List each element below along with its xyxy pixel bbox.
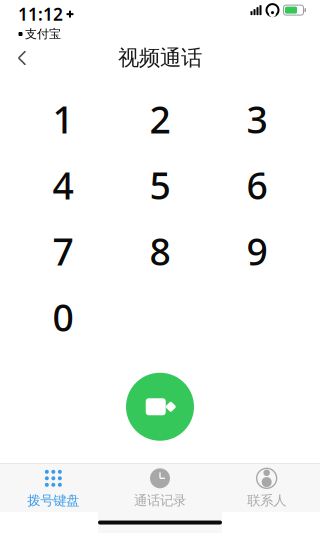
- button[interactable]: 2: [111, 86, 208, 152]
- staticText: 7: [52, 226, 73, 276]
- button[interactable]: 7: [14, 218, 111, 284]
- button[interactable]: 5: [111, 152, 208, 218]
- staticText: 2: [149, 94, 170, 144]
- button[interactable]: 联系人: [213, 464, 320, 512]
- staticText: 8: [149, 226, 170, 276]
- staticText: 视频通话: [118, 45, 202, 71]
- staticText: 5: [149, 160, 170, 210]
- button[interactable]: 0: [14, 284, 111, 350]
- staticText: 9: [246, 226, 267, 276]
- staticText: 1: [52, 94, 73, 144]
- button[interactable]: 发起视频通话: [126, 373, 194, 441]
- button[interactable]: 拨号键盘: [0, 464, 107, 512]
- button[interactable]: 9: [208, 218, 305, 284]
- staticText: 拨号键盘: [27, 492, 79, 509]
- button[interactable]: 通话记录: [107, 464, 213, 512]
- button[interactable]: 返回: [0, 40, 44, 76]
- button[interactable]: 4: [14, 152, 111, 218]
- staticText: 11:12: [18, 3, 63, 26]
- staticText: 通话记录: [134, 492, 186, 509]
- staticText: 支付宝: [25, 27, 61, 41]
- staticText: 3: [246, 94, 267, 144]
- staticText: 6: [246, 160, 267, 210]
- button[interactable]: 6: [208, 152, 305, 218]
- staticText: 0: [52, 292, 73, 342]
- button[interactable]: 1: [14, 86, 111, 152]
- button[interactable]: 3: [208, 86, 305, 152]
- staticText: 联系人: [247, 492, 286, 509]
- button[interactable]: 8: [111, 218, 208, 284]
- staticText: 4: [52, 160, 73, 210]
